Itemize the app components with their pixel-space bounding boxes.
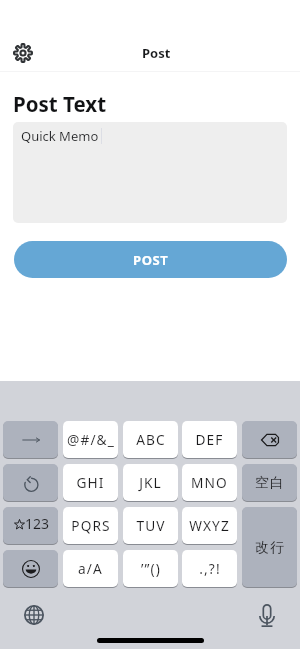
button[interactable]: WXYZ xyxy=(182,507,237,544)
staticText: ’”() xyxy=(141,559,161,578)
button[interactable]: Dictation xyxy=(250,598,284,632)
button[interactable]: a/A xyxy=(63,550,118,587)
button[interactable]: PQRS xyxy=(63,507,118,544)
button[interactable]: TUV xyxy=(123,507,178,544)
staticText: JKL xyxy=(139,473,162,492)
staticText: Post Text xyxy=(13,90,107,118)
staticText: Quick Memo xyxy=(21,127,99,145)
button[interactable]: Settings xyxy=(8,38,38,68)
button[interactable]: Next candidate xyxy=(3,421,58,458)
staticText: 123 xyxy=(25,514,50,533)
button[interactable]: MNO xyxy=(182,464,237,501)
staticText: POST xyxy=(133,251,169,269)
staticText: Post xyxy=(142,44,171,62)
button[interactable]: @#/&_ xyxy=(63,421,118,458)
button[interactable]: Quick Memo xyxy=(13,122,287,223)
button[interactable]: Backspace xyxy=(242,421,297,458)
staticText: MNO xyxy=(191,473,228,492)
button[interactable]: Symbols xyxy=(3,507,58,544)
staticText: 空白 xyxy=(255,474,285,491)
button[interactable]: 改行 xyxy=(242,507,297,587)
staticText: TUV xyxy=(136,516,166,535)
staticText: a/A xyxy=(78,559,103,578)
button[interactable]: POST xyxy=(14,241,287,278)
button[interactable]: .,?! xyxy=(182,550,237,587)
staticText: ABC xyxy=(136,430,166,449)
staticText: WXYZ xyxy=(189,516,230,535)
button[interactable]: 空白 xyxy=(242,464,297,501)
button[interactable]: Change keyboard xyxy=(17,598,51,632)
staticText: GHI xyxy=(76,473,105,492)
staticText: .,?! xyxy=(199,559,221,578)
button[interactable]: DEF xyxy=(182,421,237,458)
staticText: PQRS xyxy=(71,516,111,535)
staticText: DEF xyxy=(195,430,224,449)
staticText: 改行 xyxy=(255,539,285,556)
button[interactable]: Undo xyxy=(3,464,58,501)
staticText: @#/&_ xyxy=(67,430,115,449)
button[interactable]: ’”() xyxy=(123,550,178,587)
button[interactable]: Emoji xyxy=(3,550,58,587)
button[interactable]: JKL xyxy=(123,464,178,501)
button[interactable]: ABC xyxy=(123,421,178,458)
button[interactable]: GHI xyxy=(63,464,118,501)
